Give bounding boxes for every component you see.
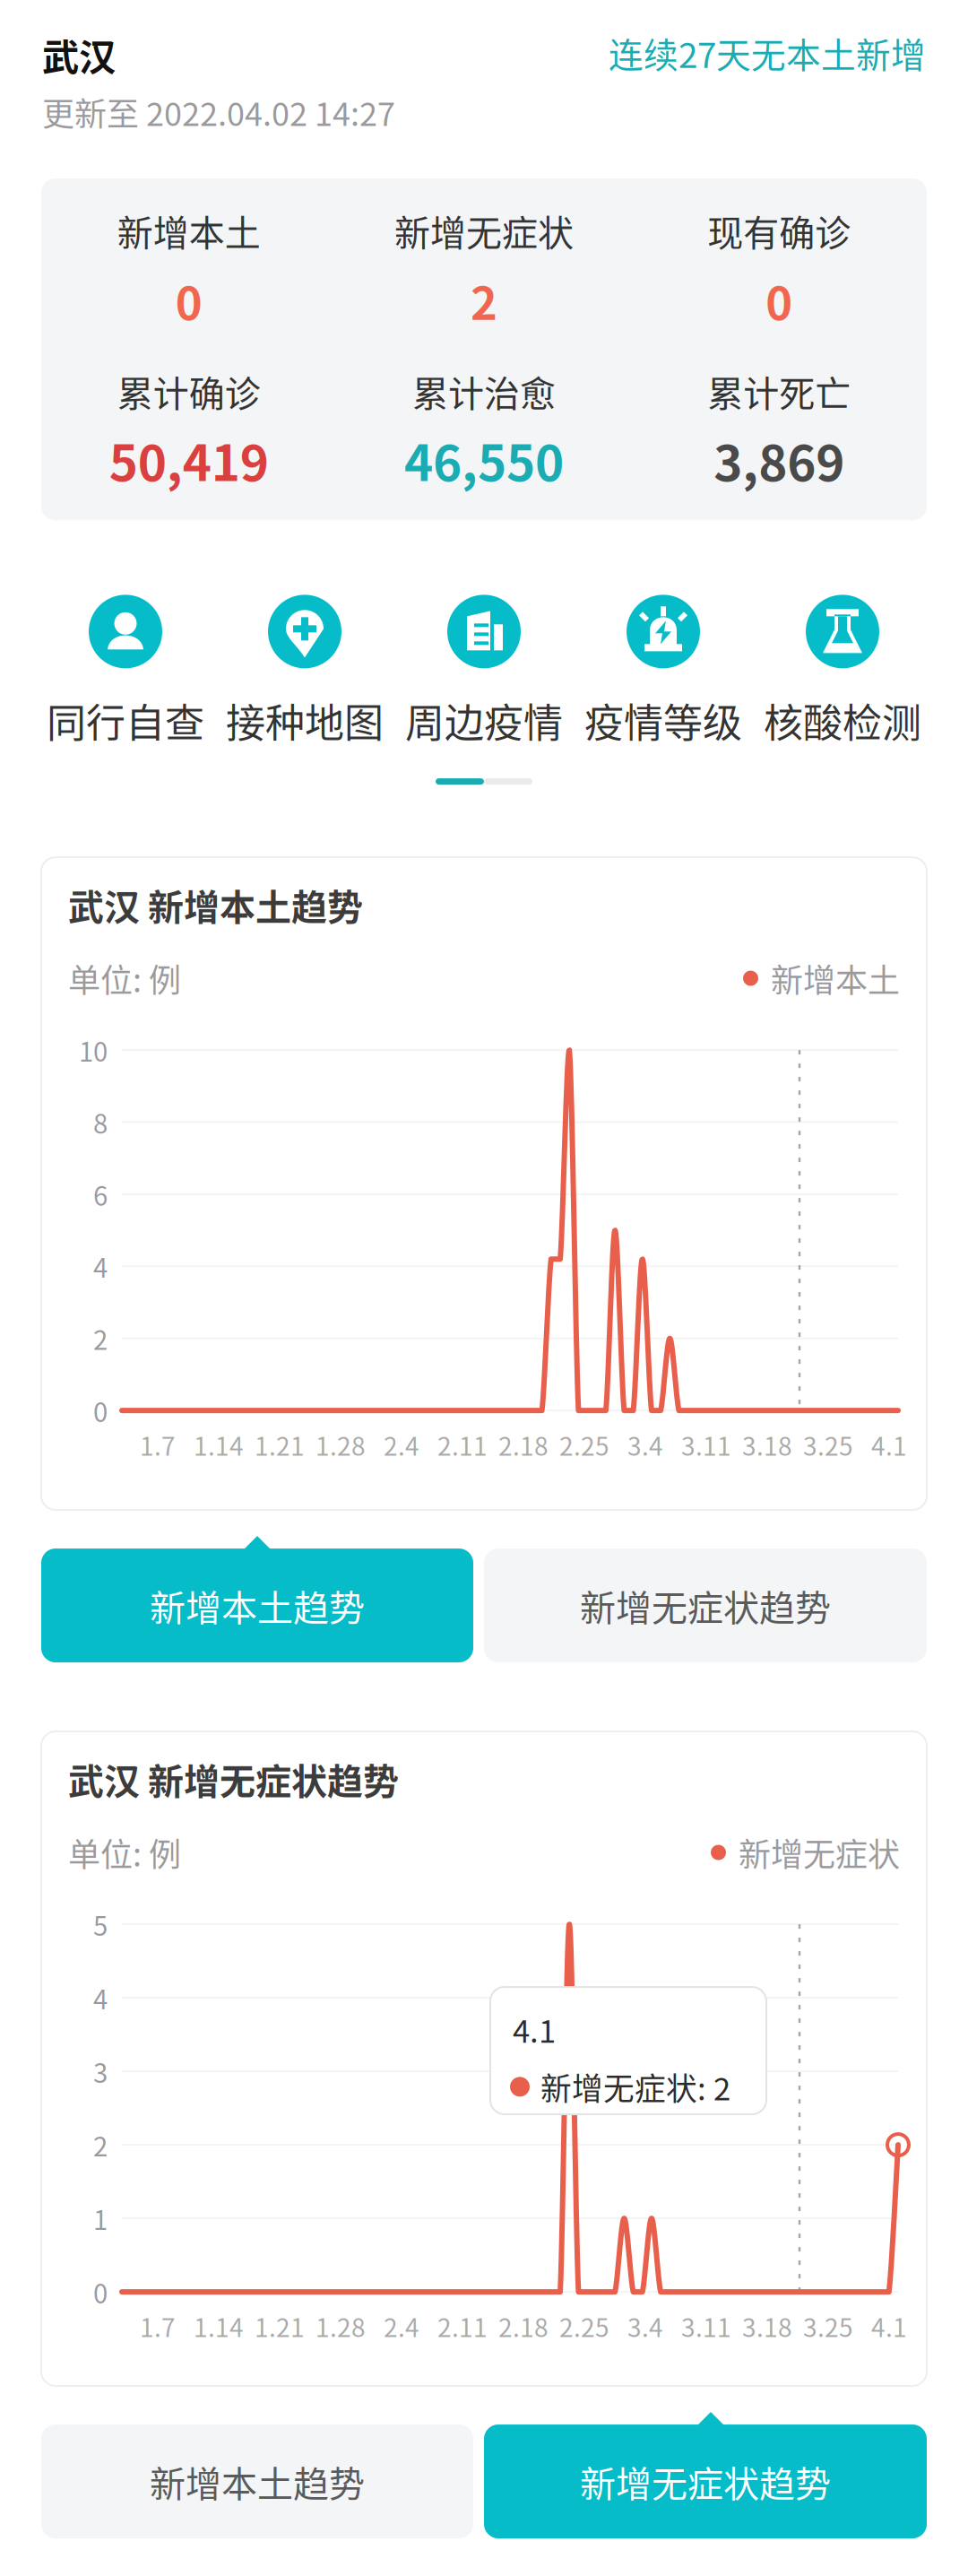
staticText: 6 xyxy=(93,1175,108,1213)
staticText: 2.4 xyxy=(384,1427,419,1463)
staticText: 2.25 xyxy=(559,2308,609,2344)
staticText: 连续27天无本土新增 xyxy=(609,28,926,78)
staticText: 3,869 xyxy=(714,424,845,495)
staticText: 0 xyxy=(175,267,202,333)
staticText: 核酸检测 xyxy=(764,692,921,749)
staticText: 4.1 xyxy=(871,1427,907,1463)
button[interactable]: 新增无症状趋势 xyxy=(484,1549,927,1662)
button[interactable]: 核酸检测 xyxy=(753,595,932,749)
staticText: 武汉 新增本土趋势 xyxy=(68,879,363,931)
staticText: 3.25 xyxy=(803,2308,853,2344)
button[interactable]: 疫情等级 xyxy=(574,595,753,749)
staticText: 1.14 xyxy=(194,1427,244,1463)
staticText: 2.11 xyxy=(437,2308,488,2344)
staticText: 1.14 xyxy=(194,2308,244,2344)
staticText: 2 xyxy=(93,1319,108,1357)
staticText: 8 xyxy=(93,1103,108,1141)
staticText: 新增无症状趋势 xyxy=(580,1579,831,1631)
staticText: 4.1 xyxy=(513,2007,556,2052)
staticText: 新增本土 xyxy=(117,204,261,256)
staticText: 2 xyxy=(471,267,497,333)
button[interactable]: 周边疫情 xyxy=(394,595,574,749)
staticText: 50,419 xyxy=(109,424,269,495)
staticText: 2.18 xyxy=(498,1427,549,1463)
staticText: 1.7 xyxy=(140,2308,176,2344)
staticText: 1.28 xyxy=(315,2308,366,2344)
staticText: 单位: 例 xyxy=(68,1829,181,1876)
staticText: 更新至 2022.04.02 14:27 xyxy=(42,89,395,135)
staticText: 2.11 xyxy=(437,1427,488,1463)
staticText: 新增无症状: 2 xyxy=(540,2064,730,2109)
staticText: 新增无症状 xyxy=(739,1829,900,1876)
button[interactable]: 同行自查 xyxy=(36,595,215,749)
staticText: 新增无症状趋势 xyxy=(580,2455,831,2507)
staticText: 3.11 xyxy=(681,1427,731,1463)
button[interactable]: 新增本土趋势 xyxy=(41,1549,473,1662)
staticText: 1.21 xyxy=(255,2308,305,2344)
staticText: 新增本土 xyxy=(771,955,900,1002)
staticText: 接种地图 xyxy=(226,692,384,749)
staticText: 1.28 xyxy=(315,1427,366,1463)
staticText: 0 xyxy=(93,1391,108,1430)
staticText: 2.18 xyxy=(498,2308,549,2344)
button[interactable]: 接种地图 xyxy=(215,595,394,749)
staticText: 2.4 xyxy=(384,2308,419,2344)
staticText: 3.18 xyxy=(742,2308,792,2344)
staticText: 周边疫情 xyxy=(405,692,563,749)
staticText: 累计治愈 xyxy=(412,365,556,417)
staticText: 累计确诊 xyxy=(117,365,261,417)
staticText: 累计死亡 xyxy=(707,365,851,417)
staticText: 武汉 xyxy=(42,28,116,82)
staticText: 现有确诊 xyxy=(707,204,851,256)
staticText: 5 xyxy=(93,1905,108,1943)
staticText: 2 xyxy=(93,2126,108,2164)
staticText: 武汉 新增无症状趋势 xyxy=(68,1753,399,1805)
staticText: 新增无症状 xyxy=(394,204,574,256)
staticText: 3.18 xyxy=(742,1427,792,1463)
staticText: 1 xyxy=(93,2199,108,2237)
staticText: 单位: 例 xyxy=(68,955,181,1002)
staticText: 46,550 xyxy=(404,424,564,495)
staticText: 疫情等级 xyxy=(584,692,742,749)
staticText: 0 xyxy=(93,2273,108,2311)
staticText: 3.4 xyxy=(627,1427,663,1463)
staticText: 10 xyxy=(79,1031,108,1069)
staticText: 3.11 xyxy=(681,2308,731,2344)
button[interactable]: 新增无症状趋势 xyxy=(484,2425,927,2538)
staticText: 3 xyxy=(93,2052,108,2090)
staticText: 新增本土趋势 xyxy=(150,1579,365,1631)
button[interactable]: 新增本土趋势 xyxy=(41,2425,473,2538)
staticText: 2.25 xyxy=(559,1427,609,1463)
staticText: 4.1 xyxy=(871,2308,907,2344)
staticText: 4 xyxy=(93,1247,108,1285)
staticText: 4 xyxy=(93,1979,108,2017)
staticText: 1.7 xyxy=(140,1427,176,1463)
staticText: 1.21 xyxy=(255,1427,305,1463)
staticText: 0 xyxy=(766,267,793,333)
button[interactable]: 连续27天无本土新增 xyxy=(609,28,926,78)
staticText: 3.4 xyxy=(627,2308,663,2344)
staticText: 3.25 xyxy=(803,1427,853,1463)
staticText: 同行自查 xyxy=(47,692,204,749)
staticText: 新增本土趋势 xyxy=(150,2455,365,2507)
